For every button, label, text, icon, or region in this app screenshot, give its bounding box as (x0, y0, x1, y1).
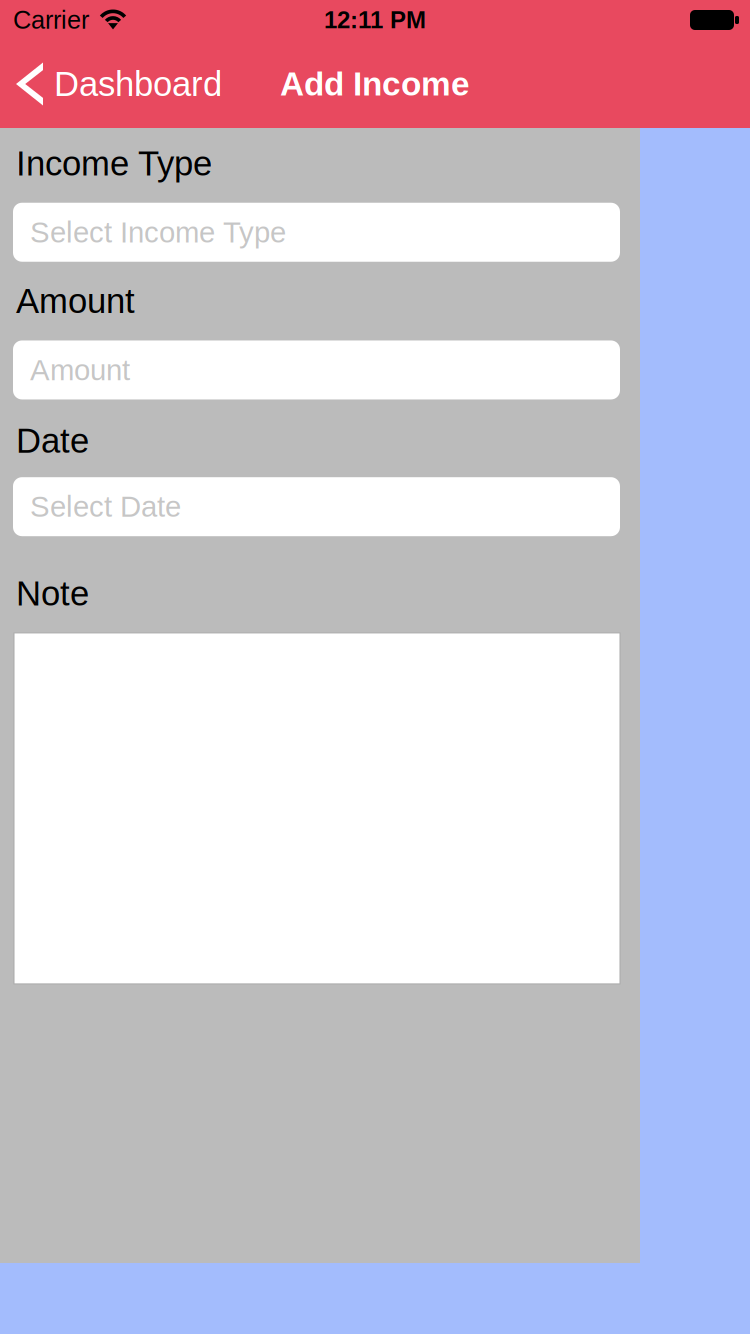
button[interactable]: Note (14, 633, 620, 984)
button[interactable]: Dashboard (0, 40, 236, 128)
staticText: Select Income Type (30, 216, 286, 249)
staticText: Carrier (13, 6, 89, 34)
staticText: Amount (30, 354, 130, 386)
staticText: 12:11 PM (324, 7, 426, 33)
staticText: Amount (16, 282, 135, 320)
staticText: Dashboard (54, 65, 222, 103)
staticText: Date (16, 421, 89, 460)
staticText: Income Type (16, 144, 212, 183)
staticText: Select Date (30, 490, 181, 523)
button[interactable]: Select Date (13, 477, 620, 536)
staticText: Add Income (280, 65, 470, 103)
button[interactable]: Amount (13, 340, 620, 399)
button[interactable]: Select Income Type (13, 203, 620, 262)
staticText: Note (16, 574, 89, 613)
